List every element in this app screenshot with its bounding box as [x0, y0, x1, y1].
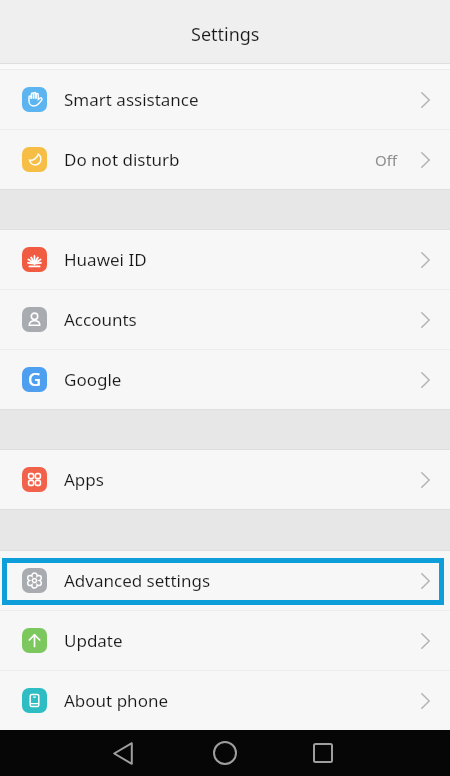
button[interactable]: Advanced settings — [0, 551, 450, 610]
staticText: Accounts — [64, 308, 137, 331]
staticText: Advanced settings — [64, 569, 211, 592]
staticText: Smart assistance — [64, 88, 199, 111]
button[interactable]: About phone — [0, 671, 450, 730]
button[interactable]: Accounts — [0, 290, 450, 349]
staticText: Do not disturb — [64, 148, 180, 171]
button[interactable] — [89, 730, 157, 776]
button[interactable] — [289, 730, 357, 776]
staticText: Off — [375, 150, 398, 170]
staticText: Update — [64, 629, 123, 652]
button[interactable] — [191, 730, 259, 776]
staticText: Apps — [64, 468, 104, 491]
button[interactable]: Do not disturb — [0, 130, 450, 189]
staticText: About phone — [64, 689, 169, 712]
button[interactable]: Update — [0, 611, 450, 670]
staticText: Google — [64, 368, 122, 391]
button[interactable]: Smart assistance — [0, 70, 450, 129]
staticText: Huawei ID — [64, 248, 147, 271]
button[interactable]: Apps — [0, 450, 450, 509]
button[interactable]: G — [0, 350, 450, 409]
button[interactable]: Huawei ID — [0, 230, 450, 289]
staticText: G — [28, 367, 42, 392]
staticText: Settings — [191, 22, 260, 47]
